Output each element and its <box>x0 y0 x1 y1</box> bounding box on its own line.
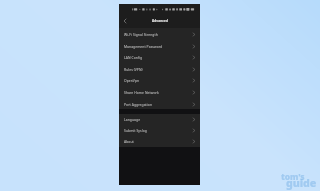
button[interactable]: About <box>119 136 200 147</box>
staticText: Rules (VPN) <box>124 67 143 72</box>
button[interactable]: Rules (VPN) <box>119 63 200 75</box>
staticText: LAN Config <box>124 55 143 60</box>
staticText: tom's <box>281 171 305 182</box>
staticText: Management Password <box>124 44 163 49</box>
button[interactable]: LAN Config <box>119 51 200 63</box>
button[interactable]: Wi-Fi Signal Strength <box>119 28 200 40</box>
button[interactable]: Port Aggregation <box>119 98 200 110</box>
staticText: Submit Syslog <box>124 128 147 133</box>
button[interactable]: Share Home Network <box>119 86 200 98</box>
button[interactable]: Language <box>119 114 200 125</box>
staticText: OpenVpn <box>124 78 140 83</box>
button[interactable]: OpenVpn <box>119 74 200 86</box>
staticText: Port Aggregation <box>124 102 153 107</box>
staticText: Language <box>124 117 141 122</box>
staticText: Share Home Network <box>124 90 159 95</box>
staticText: guide <box>286 176 317 190</box>
button[interactable]: Submit Syslog <box>119 125 200 136</box>
button[interactable]: Management Password <box>119 40 200 52</box>
staticText: Advanced <box>152 19 168 23</box>
staticText: About <box>124 139 134 144</box>
staticText: Wi-Fi Signal Strength <box>124 32 158 37</box>
button[interactable]: Back <box>120 16 129 25</box>
